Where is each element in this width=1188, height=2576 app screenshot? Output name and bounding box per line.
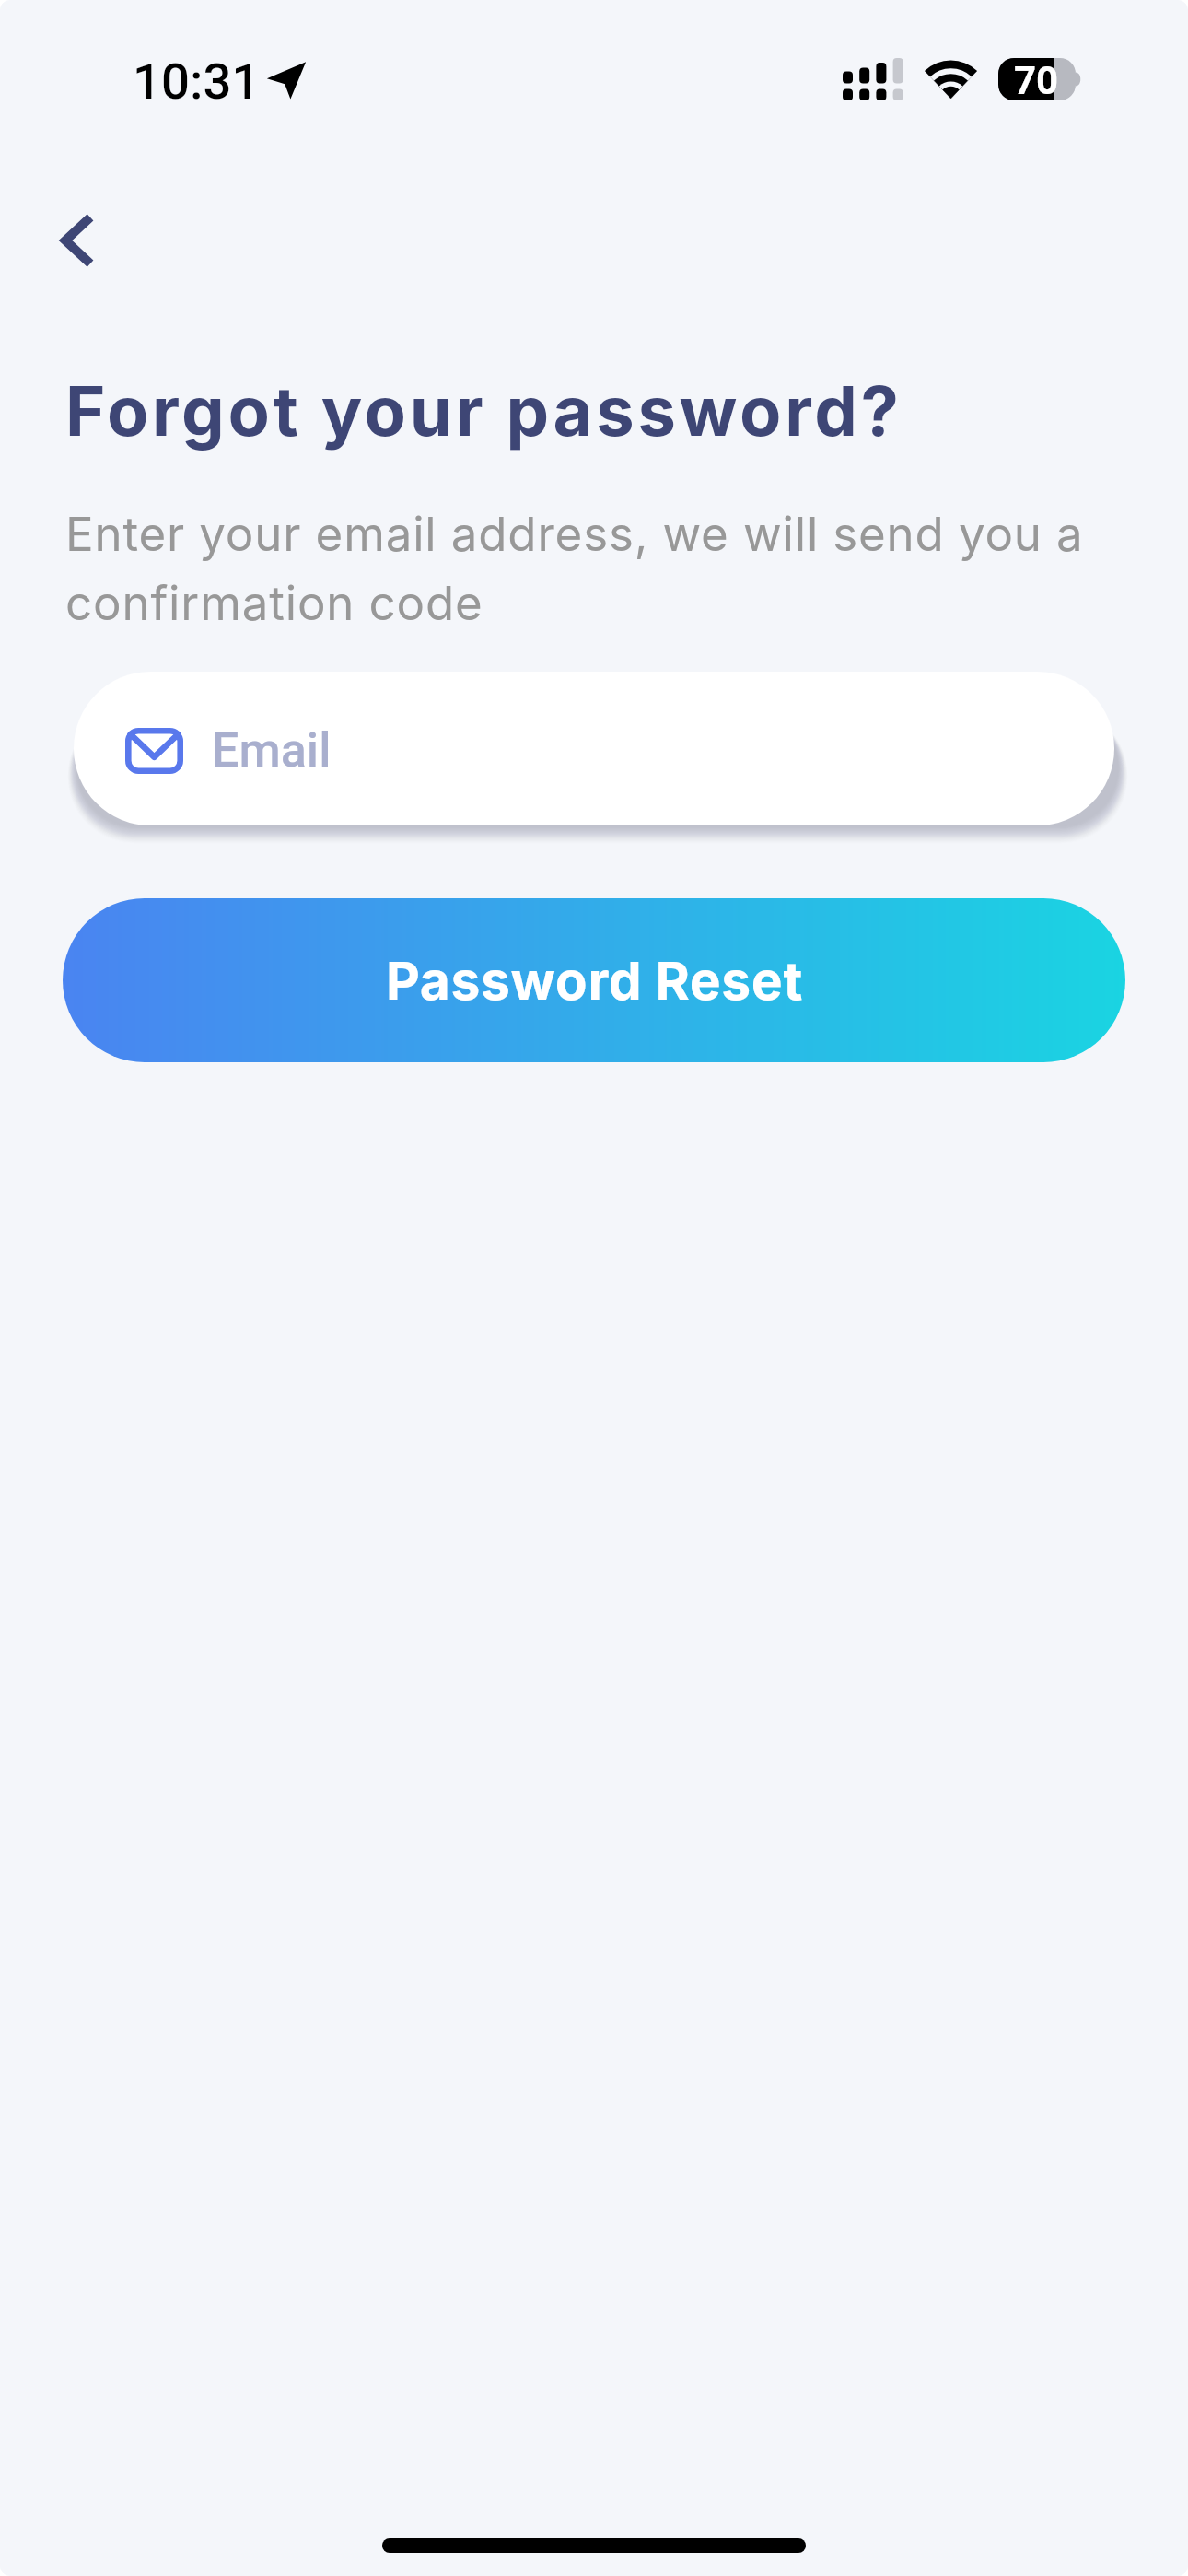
staticText: Email — [212, 722, 332, 779]
button[interactable]: Back — [27, 190, 128, 291]
staticText: Password Reset — [386, 949, 803, 1013]
staticText: 70 — [1014, 58, 1059, 100]
staticText: 10:31 — [133, 52, 261, 111]
staticText: Forgot your password? — [65, 369, 903, 452]
button[interactable]: Email — [74, 672, 1114, 825]
button[interactable]: Password Reset — [63, 898, 1125, 1062]
staticText: Enter your email address, we will send y… — [65, 506, 1084, 631]
